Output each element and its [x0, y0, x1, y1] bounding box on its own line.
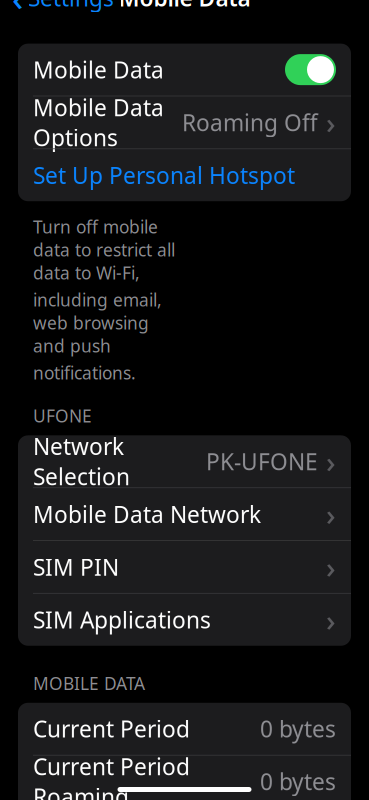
staticText: Mobile Data: [118, 0, 250, 13]
button[interactable]: Set Up Personal Hotspot: [18, 149, 351, 201]
staticText: PK-UFONE: [206, 446, 318, 476]
staticText: ›: [326, 600, 336, 639]
staticText: including email, web browsing and push: [33, 288, 162, 357]
staticText: ›: [326, 547, 336, 586]
button[interactable]: Current Period Roaming: [18, 756, 351, 800]
button[interactable]: Mobile Data Options: [18, 96, 351, 148]
staticText: ›: [326, 103, 336, 142]
button[interactable]: SIM Applications: [18, 594, 351, 646]
staticText: Mobile Data Network: [33, 499, 261, 529]
staticText: MOBILE DATA: [33, 672, 145, 695]
button[interactable]: Mobile Data: [285, 54, 336, 85]
staticText: 0 bytes: [260, 714, 336, 744]
staticText: 0 bytes: [260, 766, 336, 797]
staticText: Current Period: [33, 714, 190, 744]
staticText: Turn off mobile data to restrict all dat…: [33, 215, 175, 284]
button[interactable]: ‹: [4, 0, 122, 18]
staticText: SIM PIN: [33, 552, 119, 582]
staticText: Mobile Data Options: [33, 92, 164, 152]
staticText: Mobile Data: [33, 55, 164, 85]
button[interactable]: Current Period: [18, 703, 351, 755]
staticText: Current Period Roaming: [33, 751, 190, 800]
staticText: Set Up Personal Hotspot: [33, 160, 295, 190]
staticText: ›: [326, 495, 336, 534]
staticText: notifications.: [33, 361, 136, 384]
staticText: Network Selection: [33, 431, 130, 491]
staticText: UFONE: [33, 404, 92, 427]
staticText: Roaming Off: [182, 107, 318, 137]
staticText: SIM Applications: [33, 605, 211, 635]
button[interactable]: Network Selection: [18, 435, 351, 487]
button[interactable]: Mobile Data Network: [18, 488, 351, 540]
staticText: ›: [326, 442, 336, 481]
staticText: Settings: [28, 0, 114, 13]
staticText: ‹: [12, 0, 23, 21]
button[interactable]: SIM PIN: [18, 541, 351, 593]
